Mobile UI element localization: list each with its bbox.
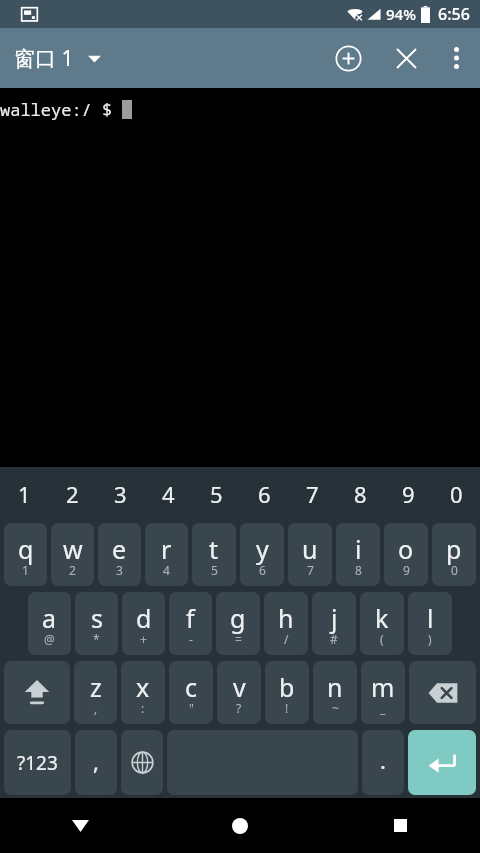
staticText: 6 [258, 479, 271, 509]
button[interactable]: p [432, 523, 476, 586]
staticText: 4 [162, 479, 175, 509]
staticText: k [375, 601, 389, 635]
staticText: : [141, 700, 145, 716]
button[interactable]: h [264, 592, 308, 655]
staticText: d [136, 601, 152, 635]
button[interactable]: 4 [144, 467, 192, 520]
staticText: l [427, 601, 434, 635]
button[interactable]: s [75, 592, 118, 655]
button[interactable]: x [121, 661, 165, 724]
button[interactable]: Home [160, 798, 320, 853]
staticText: 94% [386, 4, 416, 24]
staticText: a [42, 601, 57, 635]
staticText: 9 [403, 562, 410, 578]
button[interactable]: y [240, 523, 284, 586]
button[interactable]: e [98, 523, 141, 586]
staticText: 5 [211, 562, 218, 578]
staticText: m [371, 670, 395, 704]
button[interactable]: k [360, 592, 404, 655]
staticText: i [355, 532, 362, 566]
button[interactable]: 5 [192, 467, 240, 520]
staticText: 7 [307, 562, 314, 578]
staticText: p [446, 532, 462, 566]
button[interactable]: m [361, 661, 405, 724]
button[interactable]: ?123 [4, 730, 71, 795]
button[interactable]: n [313, 661, 357, 724]
staticText: t [209, 532, 219, 566]
staticText: s [91, 601, 103, 635]
staticText: o [398, 532, 414, 566]
button[interactable]: c [169, 661, 213, 724]
staticText: n [327, 670, 343, 704]
button[interactable]: j [312, 592, 356, 655]
button[interactable]: 9 [384, 467, 432, 520]
staticText: z [90, 670, 102, 704]
button[interactable]: l [408, 592, 452, 655]
button[interactable]: Back [0, 798, 160, 853]
button[interactable]: 8 [336, 467, 384, 520]
button[interactable]: . [362, 730, 404, 795]
staticText: h [278, 601, 294, 635]
button[interactable]: Enter [408, 730, 476, 795]
button[interactable]: w [51, 523, 94, 586]
staticText: 8 [354, 479, 367, 509]
staticText: _ [380, 700, 386, 716]
staticText: e [112, 532, 127, 566]
staticText: , [93, 746, 99, 776]
button[interactable]: o [384, 523, 428, 586]
staticText: 0 [450, 479, 463, 509]
staticText: 2 [66, 479, 79, 509]
staticText: 1 [22, 562, 29, 578]
staticText: ?123 [17, 750, 58, 776]
button[interactable]: q [4, 523, 47, 586]
button[interactable]: b [265, 661, 309, 724]
staticText: . [380, 745, 386, 775]
button[interactable]: d [122, 592, 165, 655]
staticText: 7 [306, 479, 319, 509]
button[interactable]: Backspace [409, 661, 476, 724]
button[interactable]: 6 [240, 467, 288, 520]
staticText: , [94, 700, 98, 716]
button[interactable]: New window [322, 28, 374, 88]
button[interactable]: v [217, 661, 261, 724]
button[interactable]: More options [432, 28, 480, 88]
staticText: y [256, 532, 269, 566]
button[interactable]: g [216, 592, 260, 655]
button[interactable]: u [288, 523, 332, 586]
staticText: @ [44, 631, 55, 647]
staticText: 1 [18, 479, 31, 509]
button[interactable]: 7 [288, 467, 336, 520]
button[interactable]: i [336, 523, 380, 586]
button[interactable]: Close window [380, 28, 432, 88]
staticText: u [302, 532, 318, 566]
staticText: j [331, 601, 338, 635]
button[interactable]: Change language [121, 730, 163, 795]
staticText: 窗口 1 [14, 44, 74, 73]
button[interactable]: 3 [96, 467, 144, 520]
staticText: c [185, 670, 198, 704]
staticText: / [284, 631, 289, 647]
button[interactable]: a [28, 592, 71, 655]
button[interactable]: 0 [432, 467, 480, 520]
button[interactable]: 2 [48, 467, 96, 520]
staticText: " [189, 700, 194, 716]
staticText: x [136, 670, 150, 704]
button[interactable]: f [169, 592, 212, 655]
button[interactable]: r [145, 523, 188, 586]
button[interactable]: 1 [0, 467, 48, 520]
staticText: - [189, 631, 193, 647]
staticText: 6 [259, 562, 266, 578]
staticText: 4 [163, 562, 170, 578]
button[interactable]: t [192, 523, 236, 586]
staticText: = [235, 631, 242, 647]
staticText: 3 [116, 562, 123, 578]
staticText: walleye:/ $ [0, 98, 113, 121]
button[interactable]: , [75, 730, 117, 795]
staticText: 9 [402, 479, 415, 509]
staticText: r [161, 532, 172, 566]
button[interactable]: Shift [4, 661, 70, 724]
button[interactable]: Recents [320, 798, 480, 853]
button[interactable]: 窗口 1 [0, 34, 111, 83]
button[interactable]: z [74, 661, 117, 724]
